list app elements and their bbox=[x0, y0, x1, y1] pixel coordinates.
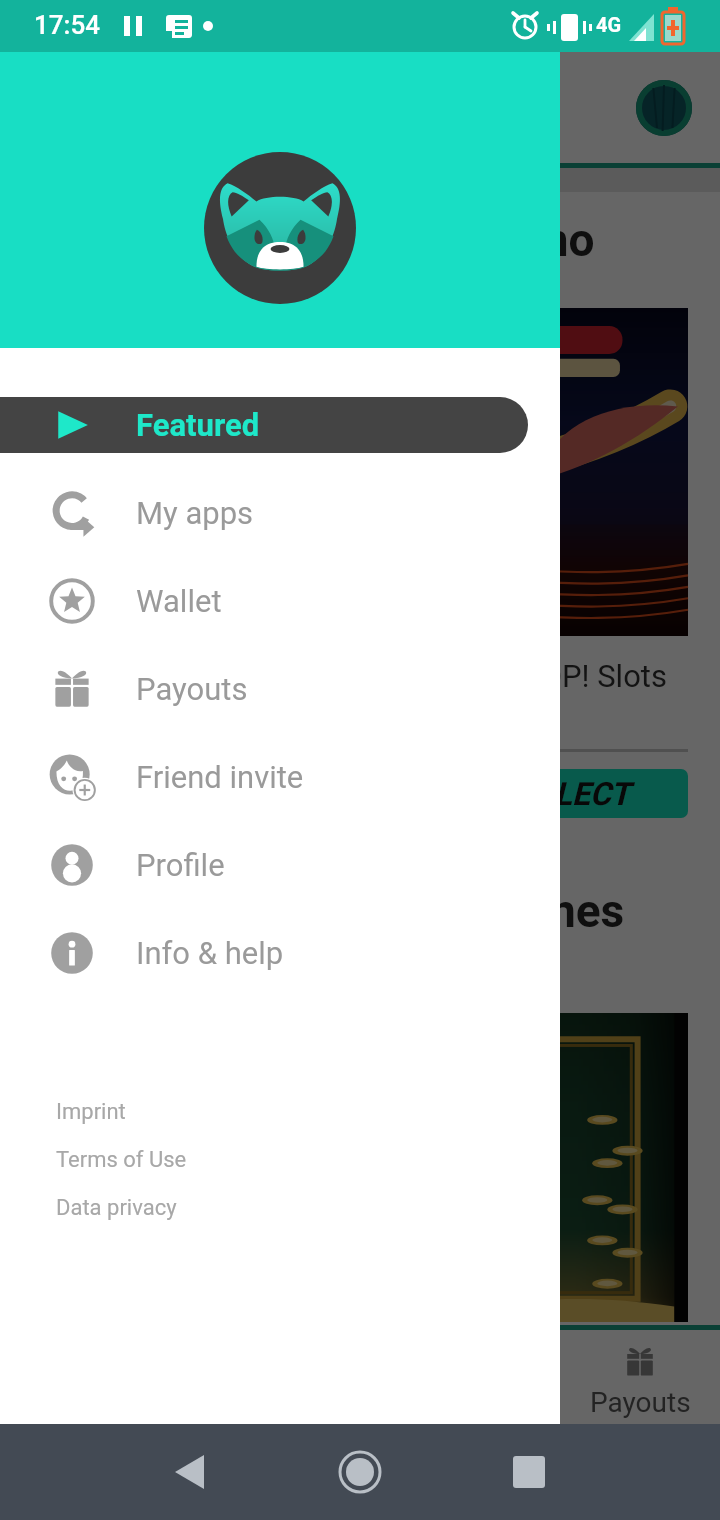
button[interactable]: My apps bbox=[0, 485, 560, 541]
staticText: Payouts bbox=[590, 1386, 691, 1419]
button[interactable]: Payouts bbox=[560, 1330, 720, 1424]
button[interactable]: Data privacy bbox=[0, 1184, 560, 1232]
staticText: My apps bbox=[136, 495, 254, 531]
staticText: Imprint bbox=[56, 1099, 126, 1125]
button[interactable]: Wallet bbox=[0, 573, 560, 629]
staticText: COLLECT bbox=[494, 775, 630, 813]
staticText: Payouts bbox=[136, 671, 248, 707]
button[interactable]: Featured bbox=[0, 397, 528, 453]
staticText: Info & help bbox=[136, 935, 284, 971]
staticText: Wallet bbox=[136, 583, 222, 619]
staticText: 17:54 bbox=[34, 10, 101, 40]
staticText: Casino bbox=[452, 213, 595, 267]
staticText: 4G bbox=[596, 13, 622, 36]
button[interactable]: Friend invite bbox=[0, 749, 560, 805]
staticText: Profile bbox=[136, 847, 225, 883]
button[interactable]: Imprint bbox=[0, 1088, 560, 1136]
button[interactable]: Payouts bbox=[0, 661, 560, 717]
staticText: Data privacy bbox=[56, 1195, 177, 1221]
button[interactable]: Terms of Use bbox=[0, 1136, 560, 1184]
button[interactable]: COLLECT bbox=[436, 769, 688, 818]
button[interactable]: Profile bbox=[0, 837, 560, 893]
staticText: Slot machines bbox=[330, 884, 625, 938]
staticText: Terms of Use bbox=[56, 1147, 187, 1173]
button[interactable]: Info & help bbox=[0, 925, 560, 981]
staticText: Friend invite bbox=[136, 759, 304, 795]
staticText: Featured bbox=[136, 407, 260, 443]
staticText: Play POP! Slots bbox=[455, 658, 667, 694]
